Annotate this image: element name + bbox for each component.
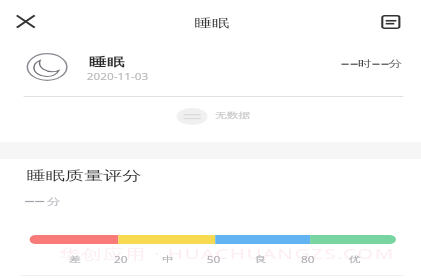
staticText: 分 xyxy=(389,58,403,70)
staticText: 良 xyxy=(255,254,266,264)
staticText: 睡眠 xyxy=(88,54,125,69)
staticText: 睡眠质量评分 xyxy=(26,167,141,183)
staticText: 2020-11-03 xyxy=(87,71,149,82)
staticText: 中 xyxy=(162,254,174,264)
staticText: 优 xyxy=(349,254,361,264)
staticText: 50 xyxy=(206,254,221,265)
button[interactable]: Close xyxy=(9,8,43,35)
staticText: 差 xyxy=(69,254,81,264)
staticText: 20 xyxy=(113,254,128,265)
staticText: 睡眠 xyxy=(194,15,230,30)
staticText: 时 xyxy=(358,58,372,70)
staticText: 80 xyxy=(300,254,315,265)
button[interactable]: Records xyxy=(372,8,408,35)
staticText: 分 xyxy=(47,196,62,208)
staticText: 华创应用 · HUACHUANGZS.COM xyxy=(59,244,396,263)
staticText: 无数据 xyxy=(215,110,250,120)
